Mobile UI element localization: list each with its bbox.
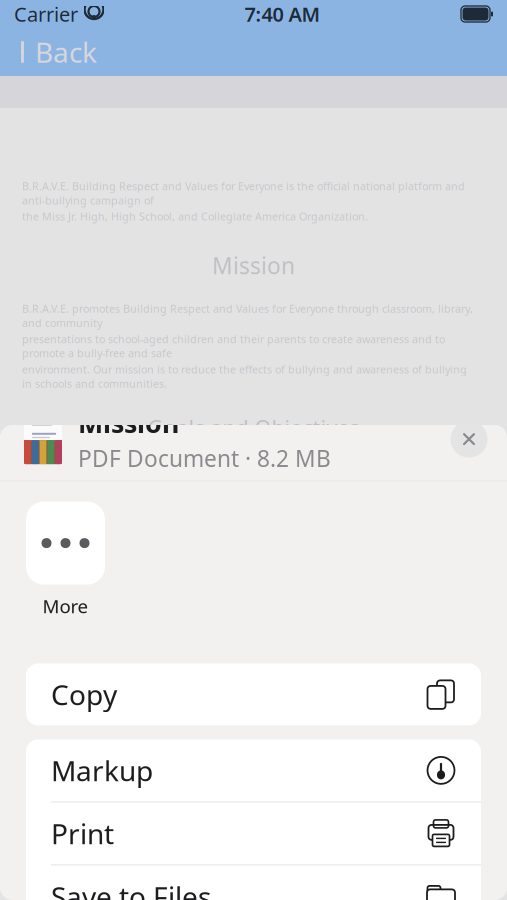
staticText: B.R.A.V.E. promotes Building Respect and… [22, 302, 473, 330]
staticText: presentations to school-aged children an… [22, 332, 445, 360]
button[interactable]: Copy [26, 663, 481, 725]
staticText: Copy [51, 676, 117, 713]
staticText: Back [35, 33, 97, 71]
staticText: Carrier [14, 1, 78, 27]
button[interactable]: Save to Files [26, 865, 481, 900]
staticText: To raise awareness about bullying in sch… [81, 501, 448, 515]
staticText: To reduce the negative effects of bullyi… [81, 460, 468, 488]
button[interactable]: Back [0, 25, 113, 79]
staticText: Mission [212, 250, 295, 281]
staticText: PDF Document · 8.2 MB [78, 443, 331, 473]
staticText: Save to Files [51, 878, 211, 900]
button[interactable]: Close [445, 415, 493, 463]
button[interactable]: Markup [26, 739, 481, 801]
staticText: Mission [78, 405, 179, 440]
staticText: environment. Our mission is to reduce th… [22, 362, 467, 391]
staticText: Goals and Objectives [147, 414, 359, 442]
staticText: More [42, 594, 88, 618]
staticText: To raise awareness and promote legislati… [81, 528, 440, 557]
staticText: 7:40 AM [244, 1, 320, 27]
staticText: To teach children to go to an adult or s… [81, 584, 446, 612]
staticText: and safe environment for children [86, 557, 260, 571]
staticText: Markup [51, 752, 153, 789]
button[interactable]: Print [26, 802, 481, 864]
button[interactable]: More [26, 502, 105, 618]
staticText: the Miss Jr. High, High School, and Coll… [22, 209, 368, 223]
staticText: B.R.A.V.E. Building Respect and Values f… [22, 179, 465, 207]
staticText: Print [51, 815, 114, 852]
